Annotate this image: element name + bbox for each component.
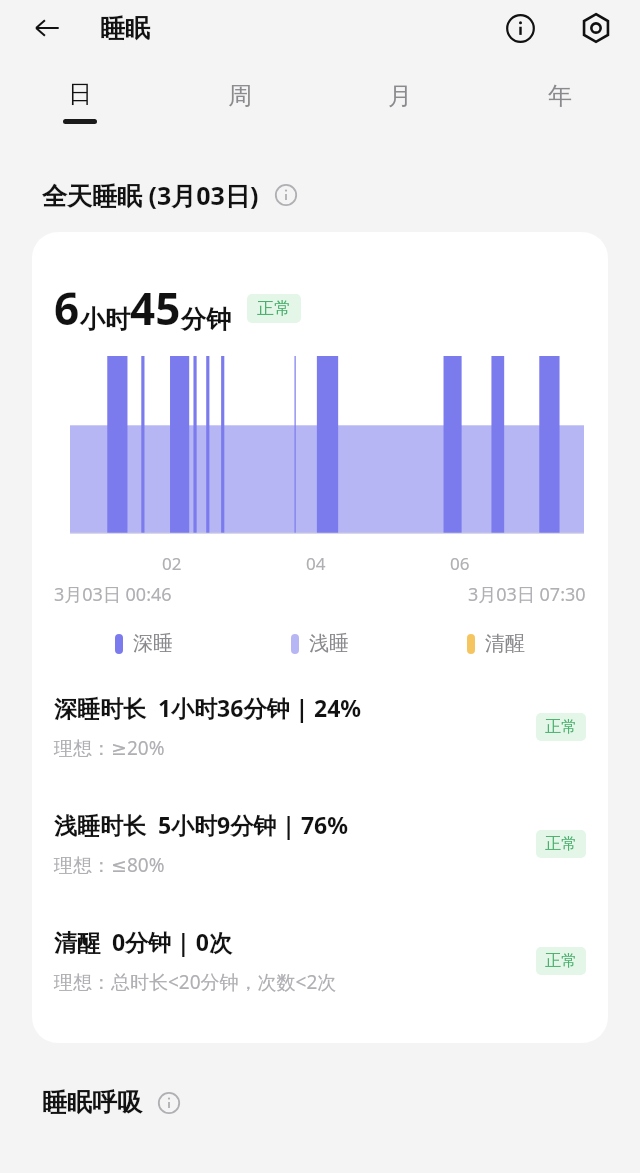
button[interactable]: About all day sleep [271, 180, 301, 210]
staticText: 小时 [80, 304, 130, 335]
button[interactable]: Settings [574, 6, 618, 50]
staticText: 正常 [545, 951, 577, 971]
button[interactable]: 清醒 [467, 631, 525, 656]
button[interactable]: 月 [320, 56, 480, 146]
button[interactable]: 浅睡 [291, 631, 349, 656]
staticText: 正常 [545, 834, 577, 854]
staticText: 周 [228, 81, 252, 111]
button[interactable]: 深睡 [115, 631, 173, 656]
staticText: 3月03日 07:30 [468, 582, 586, 607]
staticText: 02 [162, 552, 182, 574]
button[interactable]: Back [26, 7, 68, 49]
staticText: 睡眠 [100, 13, 150, 44]
button[interactable]: 日 [0, 56, 160, 146]
staticText: 45 [130, 278, 181, 338]
staticText: 6 [54, 278, 80, 338]
button[interactable]: 深睡时长 1小时36分钟 | 24% [32, 692, 608, 761]
staticText: 浅睡 [309, 631, 349, 656]
staticText: 月 [388, 81, 412, 111]
button[interactable]: Info [498, 6, 542, 50]
staticText: 睡眠呼吸 [42, 1087, 142, 1118]
staticText: 理想：总时长<20分钟，次数<2次 [54, 969, 337, 995]
staticText: 浅睡时长 5小时9分钟 | 76% [54, 809, 348, 840]
staticText: 清醒 0分钟 | 0次 [54, 926, 232, 957]
staticText: 深睡时长 1小时36分钟 | 24% [54, 692, 362, 723]
staticText: 深睡 [133, 631, 173, 656]
staticText: 日 [68, 79, 92, 109]
staticText: 年 [548, 81, 572, 111]
staticText: 理想：≥20% [54, 735, 165, 761]
staticText: 3月03日 00:46 [54, 582, 172, 607]
staticText: 全天睡眠 (3月03日) [42, 178, 259, 212]
staticText: 清醒 [485, 631, 525, 656]
staticText: 04 [306, 552, 326, 574]
staticText: 正常 [545, 717, 577, 737]
staticText: 正常 [257, 298, 291, 319]
staticText: 06 [450, 552, 470, 574]
staticText: 分钟 [181, 304, 231, 335]
button[interactable]: 年 [480, 56, 640, 146]
staticText: 理想：≤80% [54, 852, 165, 878]
button[interactable]: 周 [160, 56, 320, 146]
button[interactable]: 浅睡时长 5小时9分钟 | 76% [32, 809, 608, 878]
button[interactable]: 清醒 0分钟 | 0次 [32, 926, 608, 995]
button[interactable]: About sleep breathing [154, 1088, 184, 1118]
